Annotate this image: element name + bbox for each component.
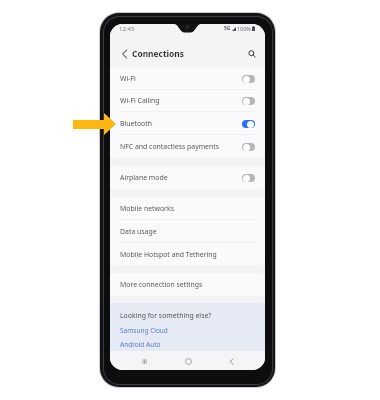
staticText: Mobile Hotspot and Tethering: [120, 250, 217, 259]
button[interactable]: NFC and contactless payments: [110, 135, 265, 158]
button[interactable]: Wi-Fi: [110, 67, 265, 90]
button[interactable]: Bluetooth: [110, 112, 265, 135]
button[interactable]: Back: [224, 354, 238, 368]
staticText: Airplane mode: [120, 173, 168, 182]
staticText: Mobile networks: [120, 204, 174, 213]
button[interactable]: Turn on: [242, 97, 255, 105]
button[interactable]: Search: [245, 47, 258, 60]
button[interactable]: Back: [118, 47, 131, 60]
button[interactable]: Wi-Fi Calling: [110, 89, 265, 112]
staticText: 100%: [237, 25, 251, 32]
button[interactable]: Turn off: [242, 120, 255, 128]
staticText: 5G: [224, 25, 231, 32]
staticText: NFC and contactless payments: [120, 142, 220, 151]
button[interactable]: Recents: [137, 354, 151, 368]
staticText: Wi-Fi Calling: [120, 96, 160, 105]
button[interactable]: Turn on: [242, 174, 255, 182]
button[interactable]: Mobile networks: [110, 197, 265, 220]
staticText: Looking for something else?: [120, 311, 212, 320]
button[interactable]: Data usage: [110, 220, 265, 243]
staticText: More connection settings: [120, 280, 203, 289]
button[interactable]: Home: [181, 354, 195, 368]
button[interactable]: Turn on: [242, 75, 255, 83]
staticText: Connections: [132, 48, 184, 59]
button[interactable]: More connection settings: [110, 273, 265, 296]
button[interactable]: Mobile Hotspot and Tethering: [110, 243, 265, 266]
staticText: Bluetooth: [120, 119, 152, 128]
button[interactable]: Samsung Cloud: [120, 326, 168, 335]
button[interactable]: Airplane mode: [110, 166, 265, 189]
staticText: Data usage: [120, 227, 157, 236]
button[interactable]: Turn on: [242, 143, 255, 151]
button[interactable]: Android Auto: [120, 340, 161, 349]
staticText: Wi-Fi: [120, 74, 136, 83]
staticText: 12:45: [119, 25, 135, 33]
